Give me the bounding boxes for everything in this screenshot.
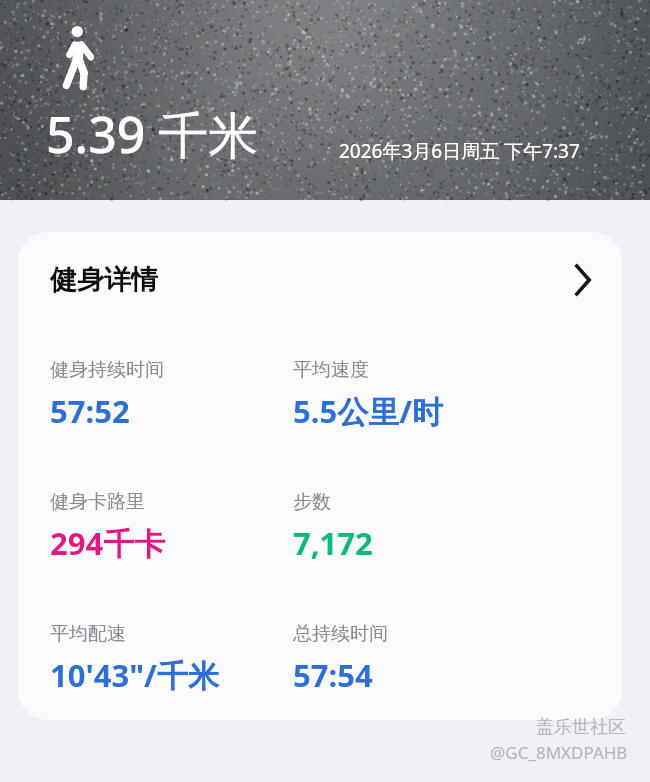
staticText: 5.5公里/时 xyxy=(293,390,444,432)
staticText: @GC_8MXDPAHB xyxy=(490,741,628,764)
staticText: 2026年3月6日周五 下午7:37 xyxy=(339,138,580,164)
staticText: 294千卡 xyxy=(50,522,166,564)
staticText: 平均配速 xyxy=(50,622,126,646)
other: Walking workout xyxy=(58,24,100,90)
staticText: 5.39 千米 xyxy=(46,100,259,168)
staticText: 57:52 xyxy=(50,390,130,432)
other: Open fitness details xyxy=(570,261,596,299)
button[interactable]: 步数 xyxy=(293,490,622,564)
staticText: 7,172 xyxy=(293,522,373,564)
button[interactable]: 健身详情 xyxy=(18,232,622,328)
button[interactable]: 平均配速 xyxy=(50,622,293,696)
button[interactable]: 平均速度 xyxy=(293,358,622,432)
staticText: 57:54 xyxy=(293,654,373,696)
button[interactable]: 健身卡路里 xyxy=(50,490,293,564)
staticText: 步数 xyxy=(293,490,331,514)
staticText: 10'43"/千米 xyxy=(50,654,219,696)
staticText: 盖乐世社区 xyxy=(536,716,626,739)
button[interactable]: 总持续时间 xyxy=(293,622,622,696)
staticText: 健身详情 xyxy=(50,263,158,297)
staticText: 健身持续时间 xyxy=(50,358,164,382)
staticText: 平均速度 xyxy=(293,358,369,382)
staticText: 总持续时间 xyxy=(293,622,388,646)
button[interactable]: 健身持续时间 xyxy=(50,358,293,432)
staticText: 健身卡路里 xyxy=(50,490,145,514)
